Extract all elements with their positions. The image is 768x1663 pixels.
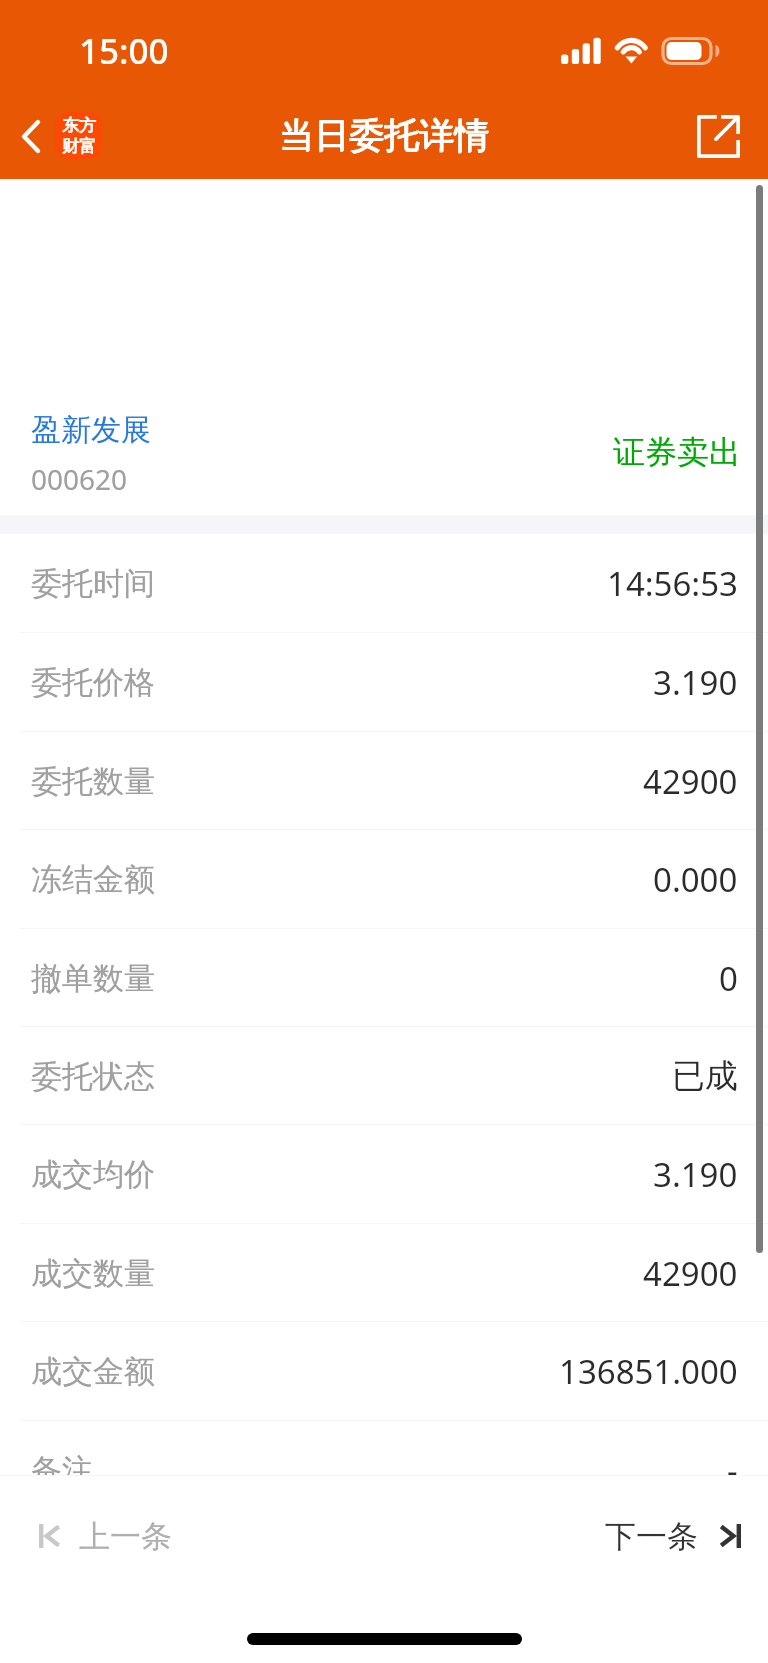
staticText: 备注 (31, 1451, 93, 1475)
staticText: 成交金额 (31, 1352, 155, 1391)
staticText: - (727, 1448, 738, 1475)
staticText: 上一条 (79, 1517, 172, 1556)
button[interactable]: 备注 (0, 1421, 768, 1475)
staticText: 委托状态 (31, 1057, 155, 1096)
staticText: 0.000 (653, 857, 738, 902)
staticText: 42900 (643, 759, 738, 804)
staticText: 42900 (643, 1251, 738, 1296)
staticText: 当日委托详情 (279, 113, 489, 157)
staticText: 撤单数量 (31, 959, 155, 998)
staticText: 委托数量 (31, 762, 155, 801)
staticText: 成交均价 (31, 1155, 155, 1194)
staticText: 下一条 (605, 1517, 698, 1556)
staticText: 冻结金额 (31, 860, 155, 899)
staticText: 已成 (672, 1055, 738, 1097)
staticText: 委托价格 (31, 663, 155, 702)
button[interactable]: 成交均价 (0, 1125, 768, 1224)
staticText: 当日委托详情 (279, 114, 489, 158)
button[interactable]: 上一条 (0, 1481, 202, 1591)
button[interactable]: 委托状态 (0, 1027, 768, 1125)
staticText: 盈新发展 (31, 411, 151, 449)
staticText: 证券卖出 (613, 432, 741, 472)
button[interactable]: Share (672, 90, 768, 179)
staticText: 15:00 (79, 27, 169, 75)
button[interactable]: Back (0, 90, 116, 179)
staticText: 当日委托详情 (280, 113, 490, 157)
staticText: 东方 (62, 115, 96, 136)
button[interactable]: 撤单数量 (0, 929, 768, 1027)
staticText: 成交数量 (31, 1254, 155, 1293)
staticText: 14:56:53 (607, 561, 738, 606)
staticText: 财富 (62, 136, 96, 157)
staticText: 136851.000 (559, 1349, 738, 1394)
button[interactable]: 冻结金额 (0, 830, 768, 929)
button[interactable]: 委托数量 (0, 732, 768, 830)
button[interactable]: 下一条 (575, 1481, 768, 1591)
button[interactable]: 委托价格 (0, 633, 768, 732)
staticText: 委托时间 (31, 564, 155, 603)
staticText: 000620 (31, 460, 128, 498)
button[interactable]: 委托时间 (0, 534, 768, 633)
staticText: 3.190 (653, 1152, 738, 1197)
button[interactable]: 成交数量 (0, 1224, 768, 1322)
staticText: 0 (719, 956, 738, 1001)
staticText: 3.190 (653, 660, 738, 705)
button[interactable]: 成交金额 (0, 1322, 768, 1421)
